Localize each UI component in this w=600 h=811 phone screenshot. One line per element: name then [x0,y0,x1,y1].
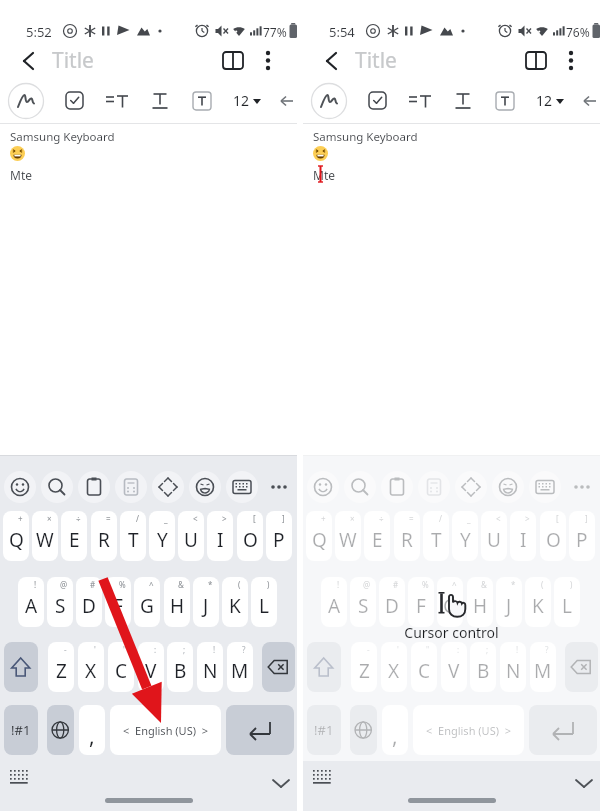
button[interactable] [8,766,32,788]
button[interactable] [270,775,292,793]
button[interactable]: ÷ [364,511,390,561]
button[interactable]: _ [452,511,478,561]
button[interactable] [262,642,295,692]
button[interactable] [14,46,44,76]
button[interactable]: ) [251,577,277,627]
button[interactable]: + [306,511,332,561]
button[interactable]: = [394,511,420,561]
button[interactable]: 12 [534,88,568,114]
button[interactable]: > [510,511,536,561]
button[interactable]: / [423,511,449,561]
button[interactable] [559,47,583,75]
button[interactable] [77,470,111,504]
button[interactable]: ! [500,642,526,692]
button[interactable]: * [193,577,219,627]
button[interactable]: & [164,577,190,627]
button[interactable]: < [178,511,204,561]
button[interactable]: !#1 [4,705,38,755]
button[interactable] [103,88,131,114]
button[interactable] [492,88,518,114]
button[interactable] [147,88,173,114]
button[interactable]: ; [470,642,496,692]
button[interactable]: > [207,511,233,561]
button[interactable]: [ [540,511,566,561]
button[interactable] [565,470,599,504]
button[interactable]: # [76,577,102,627]
button[interactable]: ! [18,577,44,627]
button[interactable]: ? [530,642,556,692]
button[interactable] [225,470,259,504]
button[interactable] [188,470,222,504]
button[interactable]: < English (US) > [110,705,221,755]
button[interactable]: # [379,577,405,627]
button[interactable]: , [79,705,105,755]
button[interactable]: ' [78,642,104,692]
button[interactable] [189,88,215,114]
button[interactable]: + [3,511,29,561]
button[interactable] [226,705,294,755]
button[interactable] [522,47,550,75]
button[interactable] [311,766,335,788]
button[interactable]: : [138,642,164,692]
button[interactable]: ] [266,511,292,561]
button[interactable] [380,470,414,504]
button[interactable]: × [32,511,58,561]
button[interactable]: × [335,511,361,561]
button[interactable] [307,642,341,692]
button[interactable] [311,83,347,119]
button[interactable] [582,90,600,112]
button[interactable]: : [441,642,467,692]
button[interactable]: ( [222,577,248,627]
button[interactable] [3,470,37,504]
button[interactable] [573,775,595,793]
button[interactable] [343,470,377,504]
button[interactable] [491,470,525,504]
button[interactable] [528,470,562,504]
button[interactable]: ? [227,642,253,692]
button[interactable] [365,88,391,114]
button[interactable]: _ [149,511,175,561]
button[interactable] [40,470,74,504]
button[interactable] [8,83,44,119]
button[interactable]: - [351,642,377,692]
button[interactable] [256,47,280,75]
button[interactable] [317,46,347,76]
button[interactable]: & [467,577,493,627]
button[interactable] [151,470,185,504]
button[interactable]: ÷ [61,511,87,561]
button[interactable] [262,470,296,504]
button[interactable]: ^ [437,577,463,627]
button[interactable]: , [382,705,408,755]
button[interactable]: " [108,642,134,692]
button[interactable]: * [496,577,522,627]
button[interactable]: !#1 [307,705,341,755]
button[interactable] [406,88,434,114]
button[interactable]: [ [237,511,263,561]
button[interactable]: % [105,577,131,627]
button[interactable]: ; [167,642,193,692]
button[interactable] [306,470,340,504]
button[interactable]: 12 [231,88,265,114]
button[interactable]: @ [350,577,376,627]
button[interactable] [454,470,488,504]
button[interactable]: < English (US) > [413,705,524,755]
button[interactable]: ! [321,577,347,627]
button[interactable]: = [91,511,117,561]
button[interactable]: " [411,642,437,692]
button[interactable] [62,88,88,114]
button[interactable]: @ [47,577,73,627]
button[interactable] [417,470,451,504]
button[interactable] [529,705,597,755]
button[interactable]: % [408,577,434,627]
button[interactable]: - [48,642,74,692]
button[interactable]: < [481,511,507,561]
button[interactable] [565,642,598,692]
button[interactable]: ( [525,577,551,627]
button[interactable]: / [120,511,146,561]
button[interactable] [114,470,148,504]
button[interactable]: ! [197,642,223,692]
button[interactable]: ' [381,642,407,692]
button[interactable] [450,88,476,114]
button[interactable] [279,90,297,112]
button[interactable]: ] [569,511,595,561]
